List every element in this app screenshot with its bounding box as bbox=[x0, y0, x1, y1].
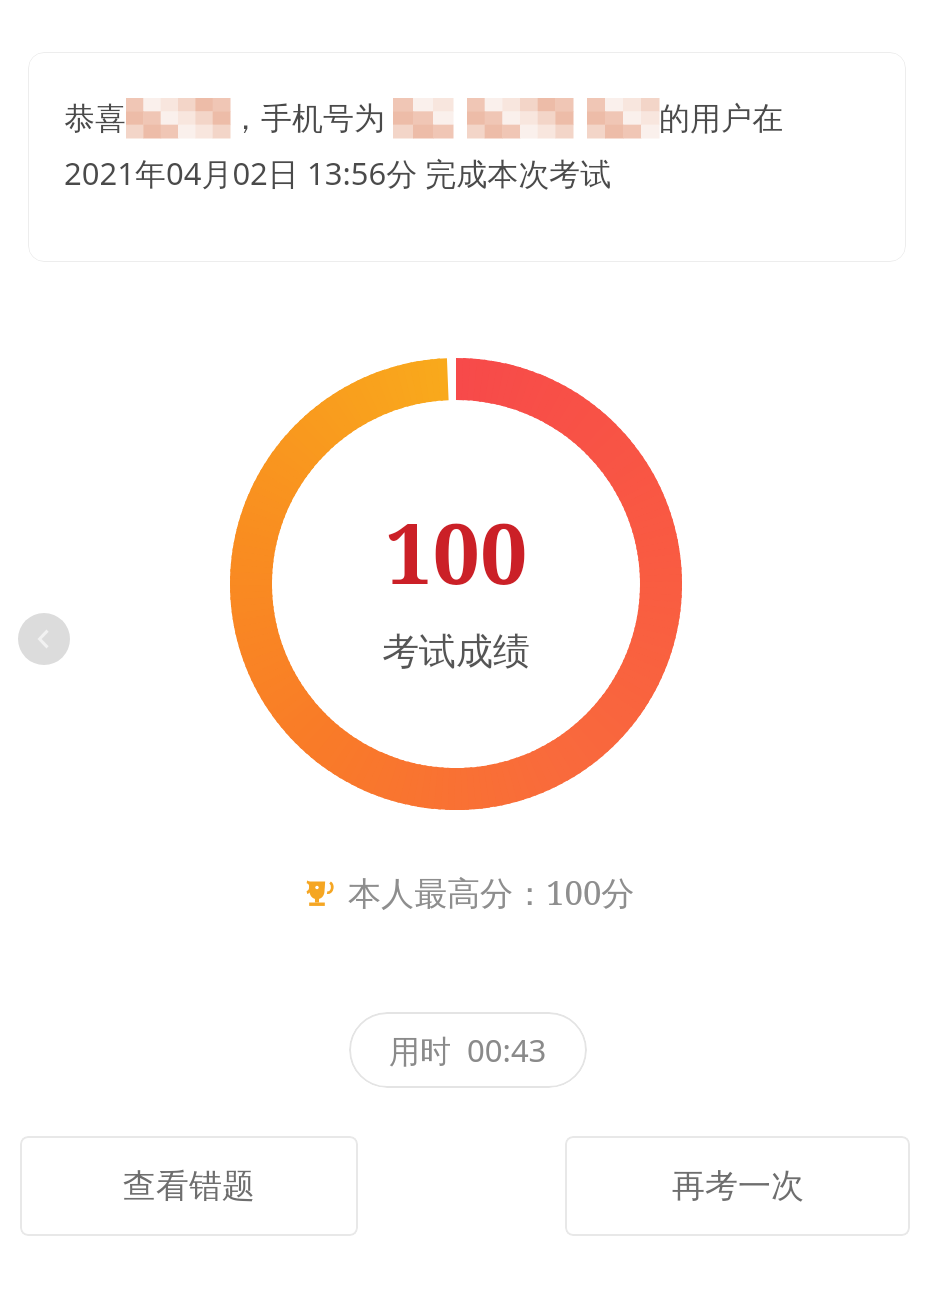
button[interactable]: 查看错题 bbox=[20, 1136, 358, 1236]
staticText: 考试成绩 bbox=[382, 628, 530, 675]
staticText: ，手机号为 bbox=[230, 99, 385, 138]
staticText: 用时 00:43 bbox=[389, 1029, 547, 1071]
staticText: 的用户在 bbox=[659, 99, 783, 138]
staticText: 查看错题 bbox=[123, 1165, 255, 1207]
staticText: 本人最高分：100分 bbox=[348, 870, 635, 915]
staticText: 恭喜 bbox=[64, 99, 126, 138]
button[interactable]: 恭喜 bbox=[28, 52, 906, 262]
button[interactable]: 用时 00:43 bbox=[349, 1012, 587, 1088]
staticText: 100 bbox=[385, 494, 528, 608]
button[interactable]: 再考一次 bbox=[565, 1136, 910, 1236]
staticText: 再考一次 bbox=[672, 1165, 804, 1207]
staticText: 2021年04月02日 13:56分 完成本次考试 bbox=[64, 152, 612, 194]
button[interactable]: Back bbox=[18, 613, 70, 665]
